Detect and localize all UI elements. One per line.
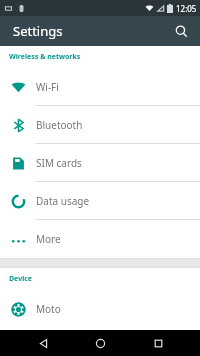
- staticText: More: [36, 232, 61, 246]
- button[interactable]: Wi-Fi: [0, 68, 200, 106]
- button[interactable]: Search: [170, 20, 192, 42]
- button[interactable]: More: [0, 220, 200, 258]
- staticText: 12:05: [176, 3, 197, 14]
- staticText: Data usage: [36, 194, 90, 208]
- button[interactable]: Data usage: [0, 182, 200, 220]
- staticText: Device: [9, 274, 33, 284]
- staticText: SIM cards: [36, 156, 82, 170]
- button[interactable]: SIM cards: [0, 144, 200, 182]
- button[interactable]: Home: [85, 330, 115, 356]
- button[interactable]: Moto: [0, 290, 200, 328]
- staticText: Wi-Fi: [36, 80, 59, 94]
- staticText: Moto: [36, 302, 61, 316]
- staticText: Wireless & networks: [9, 52, 81, 62]
- button[interactable]: Back: [28, 330, 58, 356]
- staticText: Settings: [13, 22, 63, 40]
- button[interactable]: Recents: [143, 330, 173, 356]
- button[interactable]: Bluetooth: [0, 106, 200, 144]
- staticText: Bluetooth: [36, 118, 83, 132]
